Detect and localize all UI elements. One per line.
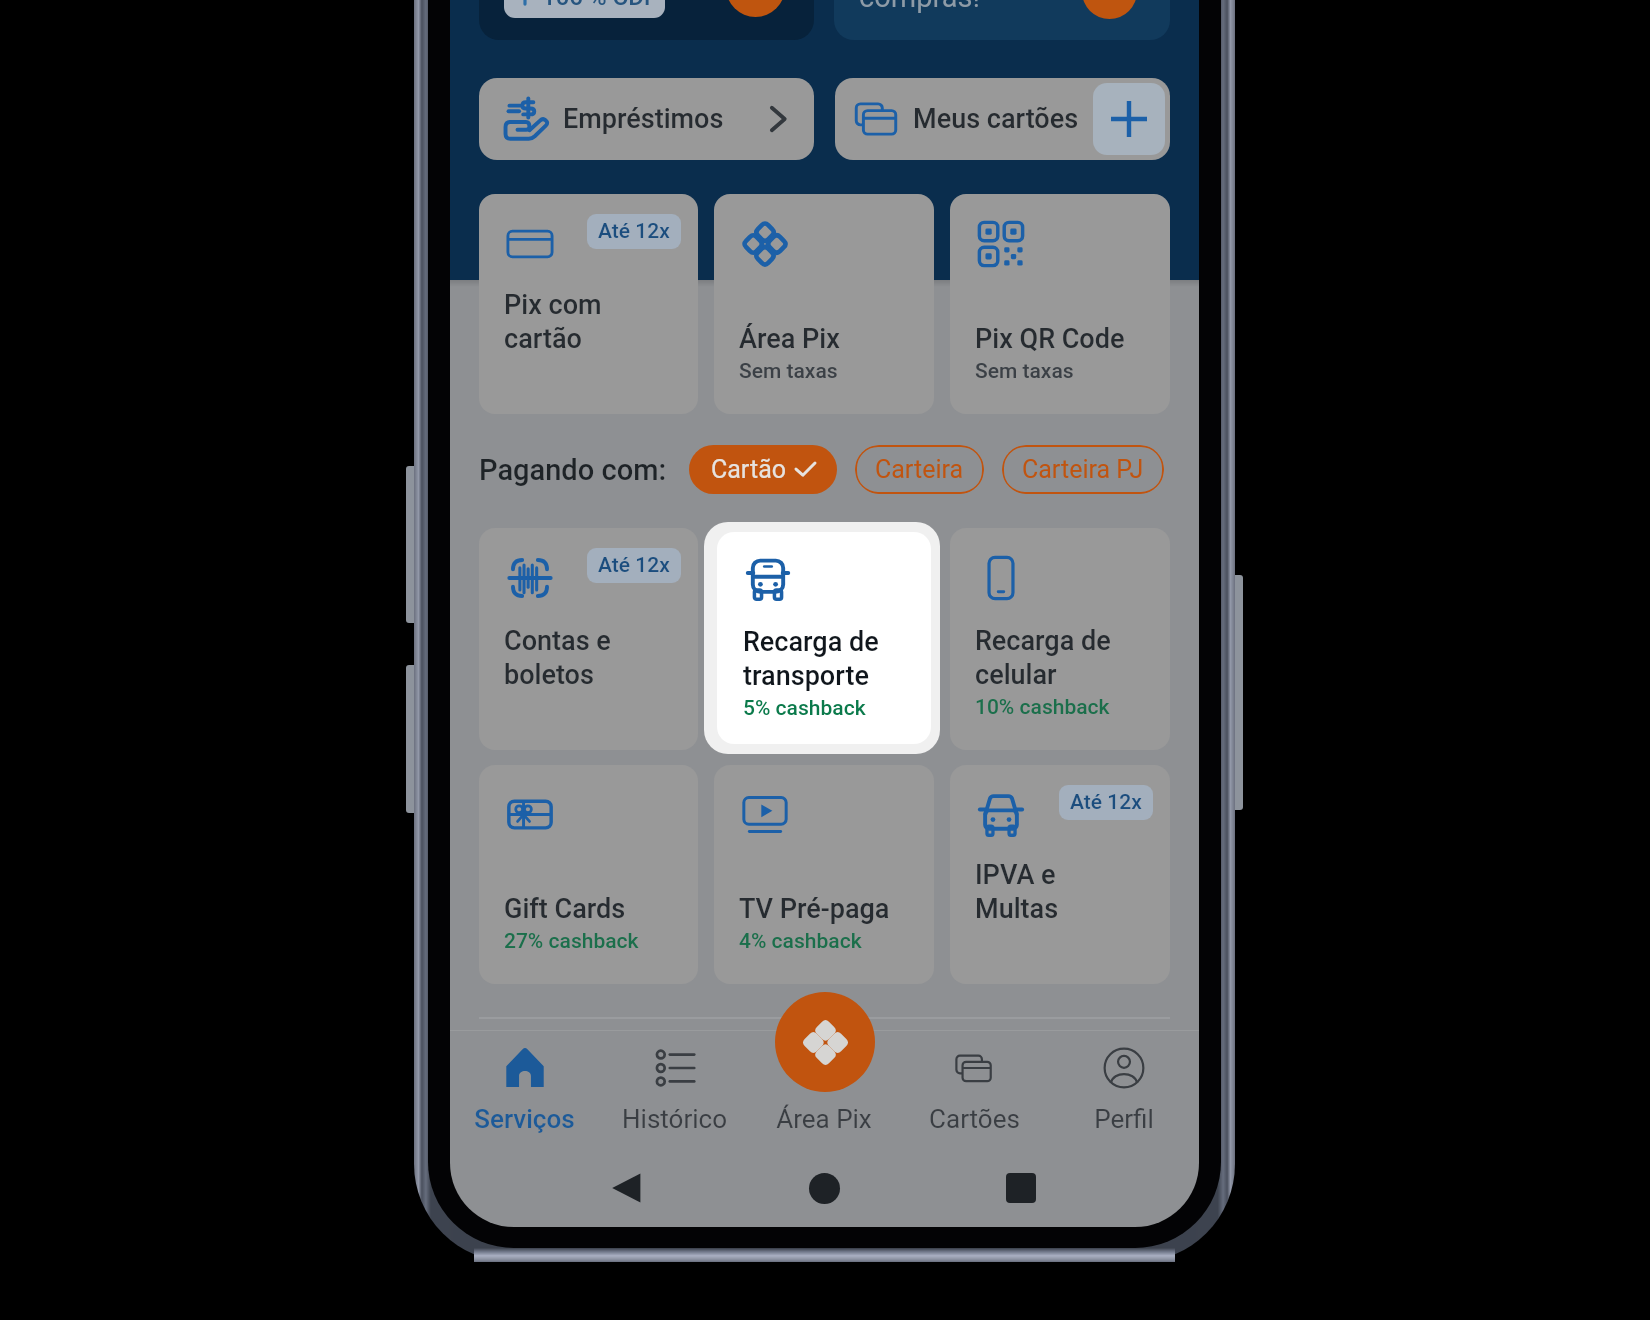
button[interactable]: 106 % CDI <box>479 0 814 40</box>
button[interactable]: Área Pix <box>749 1031 899 1134</box>
button[interactable]: Serviços <box>450 1031 599 1134</box>
staticText: Gift Cards <box>504 893 626 925</box>
button[interactable]: Recarga de celular <box>950 528 1170 750</box>
staticText: Perfil <box>1094 1104 1154 1134</box>
staticText: Área Pix <box>776 1104 872 1134</box>
button[interactable]: Início <box>796 1160 852 1216</box>
button[interactable]: IPVA e Multas <box>950 765 1170 984</box>
button[interactable]: Perfil <box>1049 1031 1199 1134</box>
staticText: Sem taxas <box>739 359 838 384</box>
button[interactable]: Recarga de transporte <box>717 532 931 744</box>
button[interactable]: Contas e boletos <box>479 528 698 750</box>
staticText: Recarga de celular <box>975 625 1111 691</box>
staticText: IPVA e Multas <box>975 859 1059 925</box>
staticText: Área Pix <box>739 323 840 355</box>
staticText: Carteira PJ <box>1022 455 1144 484</box>
button[interactable]: Voltar <box>598 1160 654 1216</box>
staticText: compras! <box>859 0 980 14</box>
button[interactable]: TV Pré-paga <box>714 765 934 984</box>
staticText: 106 % CDI <box>542 0 651 11</box>
staticText: Meus cartões <box>913 103 1079 135</box>
staticText: Cartão <box>711 455 786 484</box>
button[interactable]: Pix QR Code <box>950 194 1170 414</box>
staticText: Sem taxas <box>975 359 1074 384</box>
button[interactable]: Área Pix <box>775 992 875 1092</box>
staticText: 4% cashback <box>739 929 862 954</box>
staticText: 27% cashback <box>504 929 639 954</box>
staticText: 5% cashback <box>743 696 866 721</box>
staticText: TV Pré-paga <box>739 893 890 925</box>
button[interactable]: Carteira <box>855 445 984 494</box>
button[interactable]: Recentes <box>993 1160 1049 1216</box>
button[interactable]: Cartões <box>899 1031 1049 1134</box>
button[interactable]: Empréstimos <box>479 78 814 160</box>
staticText: Contas e boletos <box>504 625 611 691</box>
button[interactable]: Área Pix <box>714 194 934 414</box>
staticText: Cartões <box>929 1104 1020 1134</box>
staticText: Pix com cartão <box>504 289 602 355</box>
staticText: Recarga de transporte <box>743 626 879 692</box>
staticText: Serviços <box>474 1104 575 1134</box>
staticText: 10% cashback <box>975 695 1110 720</box>
button[interactable]: Pix com cartão <box>479 194 698 414</box>
staticText: Até 12x <box>598 553 670 578</box>
staticText: Até 12x <box>598 219 670 244</box>
staticText: Pix QR Code <box>975 323 1125 355</box>
button[interactable]: Cartão <box>689 445 837 494</box>
staticText: Histórico <box>622 1104 727 1134</box>
staticText: Pagando com: <box>479 453 667 487</box>
button[interactable]: Adicionar cartão <box>1093 83 1165 155</box>
staticText: Até 12x <box>1070 790 1142 815</box>
button[interactable]: Carteira PJ <box>1002 445 1164 494</box>
button[interactable]: compras! <box>834 0 1170 40</box>
button[interactable]: Meus cartões <box>835 78 1170 160</box>
staticText: Carteira <box>875 455 964 484</box>
button[interactable]: Gift Cards <box>479 765 698 984</box>
button[interactable]: Histórico <box>599 1031 749 1134</box>
staticText: Empréstimos <box>563 103 724 135</box>
